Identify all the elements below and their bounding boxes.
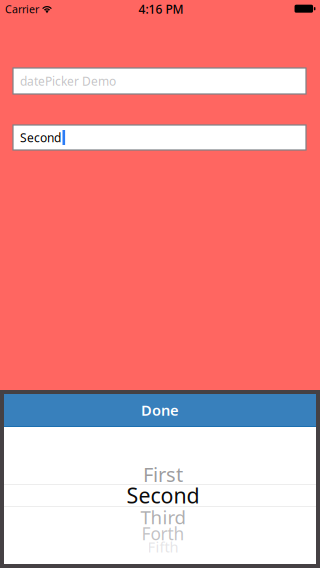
staticText: 4:16 PM <box>138 1 183 17</box>
staticText: First <box>143 461 183 488</box>
staticText: Fifth <box>147 537 178 557</box>
staticText: Third <box>140 505 185 529</box>
button[interactable]: datePicker Demo <box>13 68 306 94</box>
staticText: Second <box>20 129 61 145</box>
button[interactable]: Second <box>13 125 306 150</box>
button[interactable]: Done <box>4 394 316 426</box>
staticText: Second <box>126 481 199 509</box>
staticText: Done <box>141 400 179 420</box>
staticText: Carrier <box>5 2 39 16</box>
staticText: Forth <box>141 522 184 545</box>
staticText: datePicker Demo <box>20 73 116 89</box>
